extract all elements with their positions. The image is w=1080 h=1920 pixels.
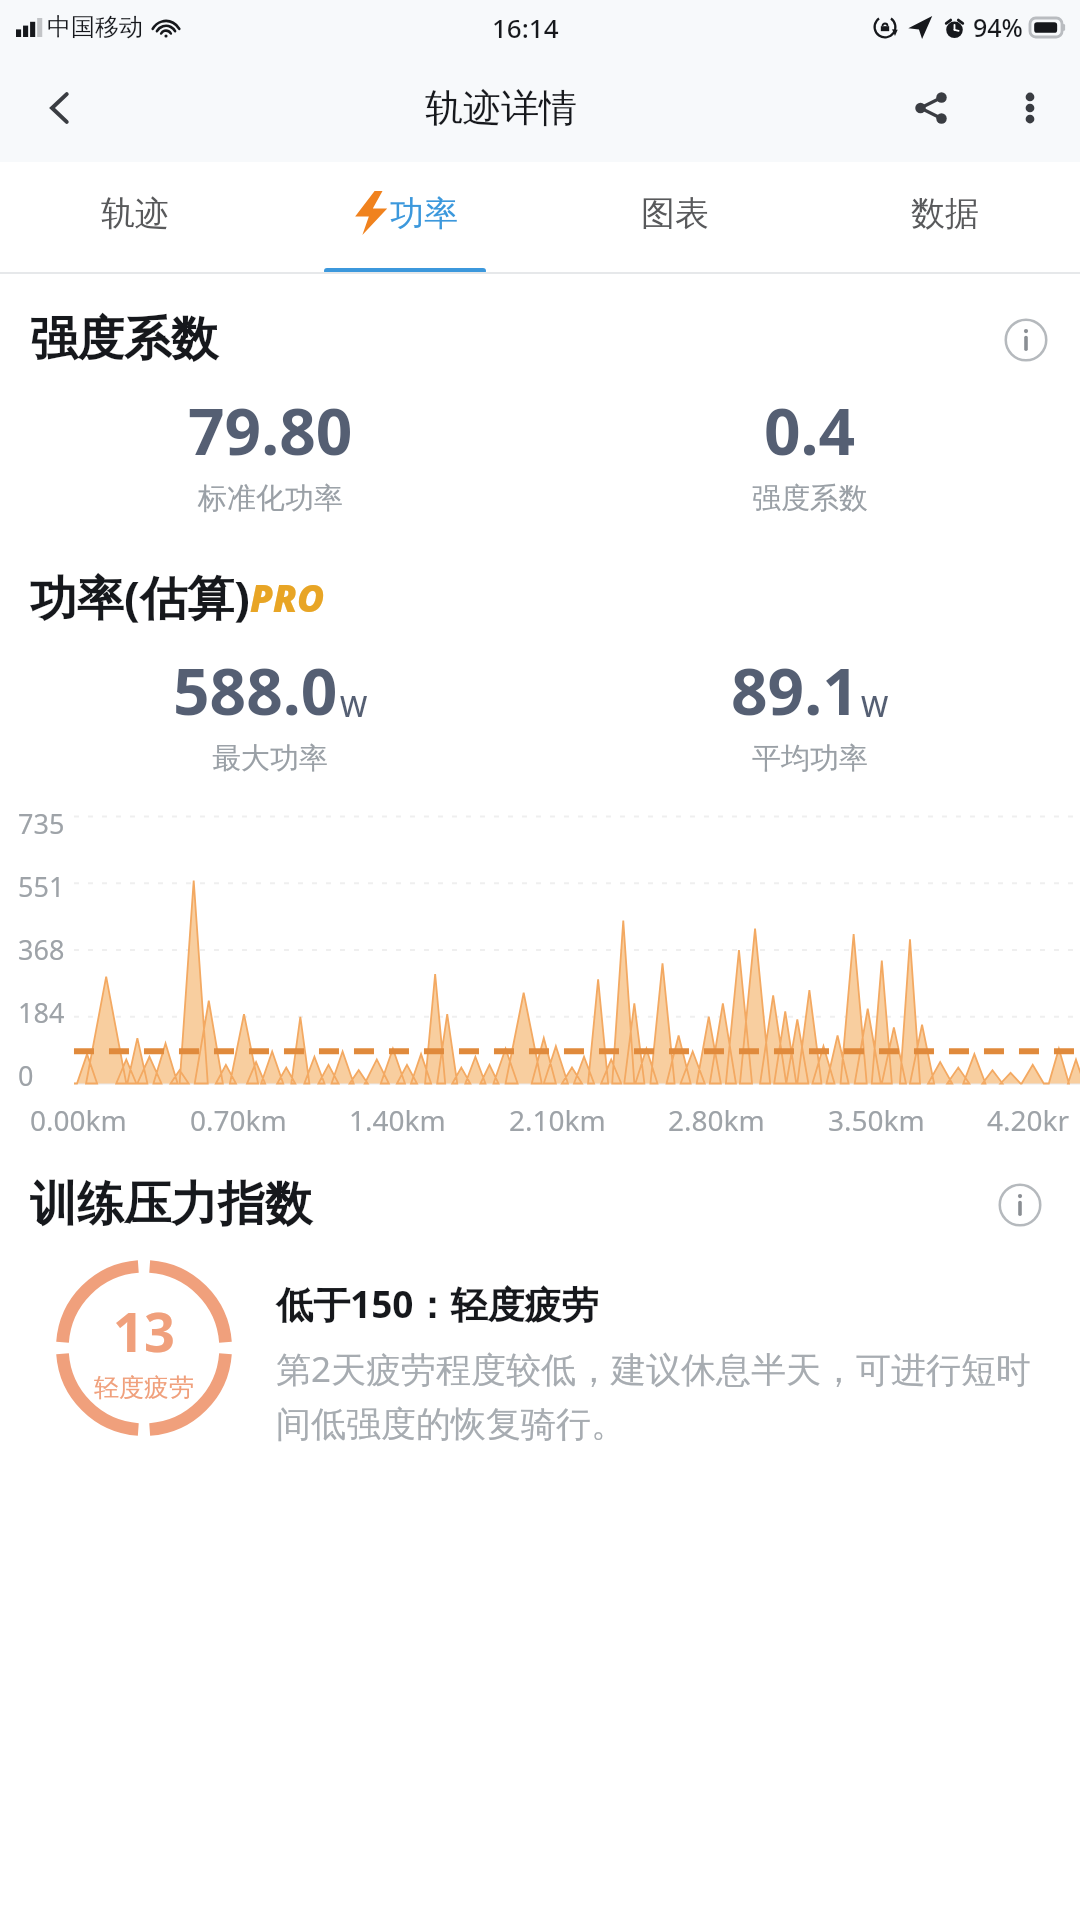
staticText: 551 xyxy=(18,868,65,905)
staticText: 标准化功率 xyxy=(198,480,343,517)
staticText: 功率 xyxy=(390,192,458,235)
staticText: 数据 xyxy=(911,192,979,235)
staticText: 平均功率 xyxy=(752,740,868,777)
staticText: 0 xyxy=(18,1057,34,1094)
staticText: 低于150：轻度疲劳 xyxy=(276,1278,599,1329)
staticText: W xyxy=(340,686,368,725)
staticText: 588.0 xyxy=(173,647,338,734)
button[interactable]: Share xyxy=(882,54,980,162)
staticText: 1.40km xyxy=(349,1101,446,1139)
staticText: 368 xyxy=(18,931,65,968)
staticText: 强度系数 xyxy=(30,310,218,369)
button[interactable]: Info xyxy=(998,312,1054,368)
staticText: 89.1 xyxy=(731,647,859,734)
staticText: 第2天疲劳程度较低，建议休息半天，可进行短时间低强度的恢复骑行。 xyxy=(276,1345,1046,1447)
staticText: 功率(估算) xyxy=(30,565,250,629)
staticText: 2.80km xyxy=(668,1101,765,1139)
staticText: 强度系数 xyxy=(752,480,868,517)
button[interactable]: 功率 xyxy=(270,162,540,274)
staticText: 图表 xyxy=(641,192,709,235)
staticText: 0.00km xyxy=(30,1101,127,1139)
staticText: 轨迹详情 xyxy=(425,84,577,132)
button[interactable]: Info xyxy=(992,1177,1048,1233)
staticText: 轨迹 xyxy=(101,192,169,235)
staticText: 13 xyxy=(113,1294,175,1368)
button[interactable]: More options xyxy=(980,54,1080,162)
staticText: 16:14 xyxy=(492,10,559,45)
staticText: 训练压力指数 xyxy=(30,1175,312,1234)
button[interactable]: 数据 xyxy=(810,162,1080,274)
staticText: 3.50km xyxy=(828,1101,925,1139)
staticText: 中国移动 xyxy=(47,12,143,42)
staticText: 最大功率 xyxy=(212,740,328,777)
staticText: 2.10km xyxy=(509,1101,606,1139)
staticText: 735 xyxy=(18,805,65,842)
staticText: 94% xyxy=(973,10,1023,44)
staticText: 184 xyxy=(18,994,65,1031)
button[interactable]: Back xyxy=(0,54,120,162)
staticText: PRO xyxy=(250,572,325,622)
staticText: 4.20kr xyxy=(987,1101,1070,1139)
staticText: 79.80 xyxy=(188,387,353,474)
staticText: W xyxy=(861,686,889,725)
staticText: 轻度疲劳 xyxy=(94,1372,194,1403)
staticText: 0.4 xyxy=(764,387,856,474)
button[interactable]: 轨迹 xyxy=(0,162,270,274)
button[interactable]: 图表 xyxy=(540,162,810,274)
staticText: 0.70km xyxy=(190,1101,287,1139)
